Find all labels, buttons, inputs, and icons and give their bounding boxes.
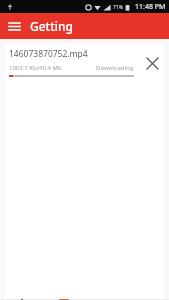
staticText: Getting (30, 18, 74, 34)
button[interactable]: 146073870752.mp4 (3, 42, 166, 300)
staticText: 71% (113, 4, 123, 11)
button[interactable]: Open navigation menu (4, 16, 24, 36)
staticText: Downloading (96, 64, 134, 72)
button[interactable]: Cancel download (138, 49, 166, 77)
staticText: 1003.7 Kb/40.4 Mb (9, 64, 62, 72)
staticText: 146073870752.mp4 (9, 48, 88, 60)
staticText: 11:48 PM (135, 2, 166, 12)
